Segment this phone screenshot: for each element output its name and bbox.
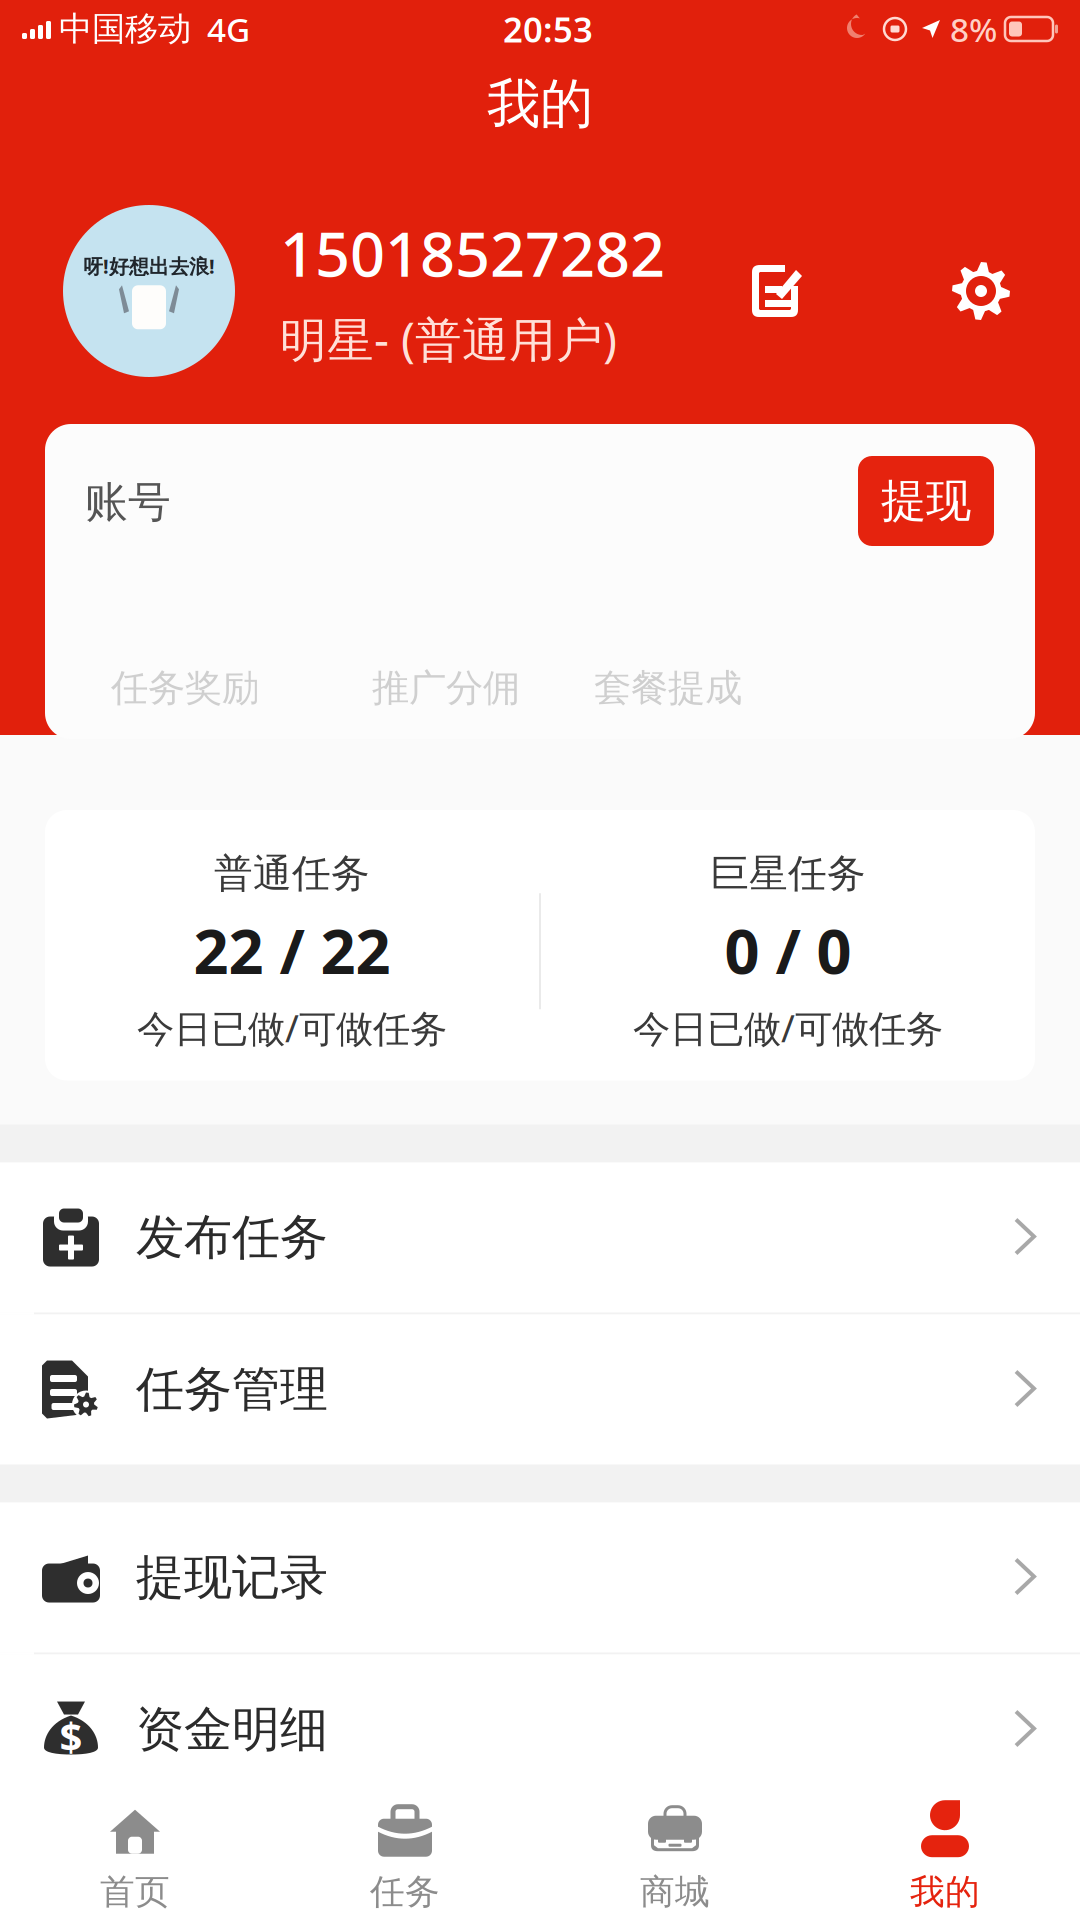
staticText: $ bbox=[59, 1709, 82, 1763]
button[interactable]: Settings bbox=[952, 261, 1010, 321]
staticText: 15018527282 bbox=[280, 212, 665, 294]
staticText: 商城 bbox=[640, 1871, 710, 1913]
staticText: 推广分佣 bbox=[372, 665, 520, 711]
button[interactable]: 发布任务 bbox=[0, 1162, 1080, 1312]
staticText: 任务管理 bbox=[136, 1360, 328, 1419]
staticText: 20:53 bbox=[503, 6, 593, 52]
staticText: 22 / 22 bbox=[193, 909, 390, 991]
button[interactable]: 我的 bbox=[810, 1790, 1080, 1920]
button[interactable]: 提现记录 bbox=[0, 1502, 1080, 1652]
button[interactable]: Edit profile bbox=[746, 260, 804, 322]
staticText: 明星- (普通用户) bbox=[280, 308, 617, 370]
button[interactable]: 提现 bbox=[858, 456, 994, 546]
button[interactable]: 任务 bbox=[270, 1790, 540, 1920]
staticText: 套餐提成 bbox=[594, 665, 742, 711]
staticText: 资金明细 bbox=[136, 1700, 328, 1759]
staticText: 8% bbox=[950, 7, 997, 51]
button[interactable]: 商城 bbox=[540, 1790, 810, 1920]
staticText: 提现记录 bbox=[136, 1548, 328, 1607]
staticText: 账号 bbox=[85, 476, 171, 528]
staticText: 提现 bbox=[881, 473, 971, 529]
staticText: 0 / 0 bbox=[724, 909, 851, 991]
staticText: 今日已做/可做任务 bbox=[633, 1003, 943, 1052]
staticText: 首页 bbox=[100, 1871, 170, 1913]
staticText: 任务奖励 bbox=[111, 665, 259, 711]
staticText: 我的 bbox=[487, 71, 593, 137]
staticText: 我的 bbox=[910, 1871, 980, 1913]
staticText: 任务 bbox=[370, 1871, 440, 1913]
staticText: 巨星任务 bbox=[710, 850, 866, 897]
button[interactable]: 任务管理 bbox=[0, 1314, 1080, 1464]
staticText: 4G bbox=[207, 7, 250, 51]
button[interactable]: $ bbox=[0, 1654, 1080, 1804]
staticText: 普通任务 bbox=[214, 850, 370, 897]
button[interactable]: 首页 bbox=[0, 1790, 270, 1920]
staticText: 呀!好想出去浪! bbox=[83, 253, 215, 279]
staticText: 今日已做/可做任务 bbox=[137, 1003, 447, 1052]
staticText: 发布任务 bbox=[136, 1208, 328, 1267]
staticText: 中国移动 bbox=[59, 8, 191, 49]
